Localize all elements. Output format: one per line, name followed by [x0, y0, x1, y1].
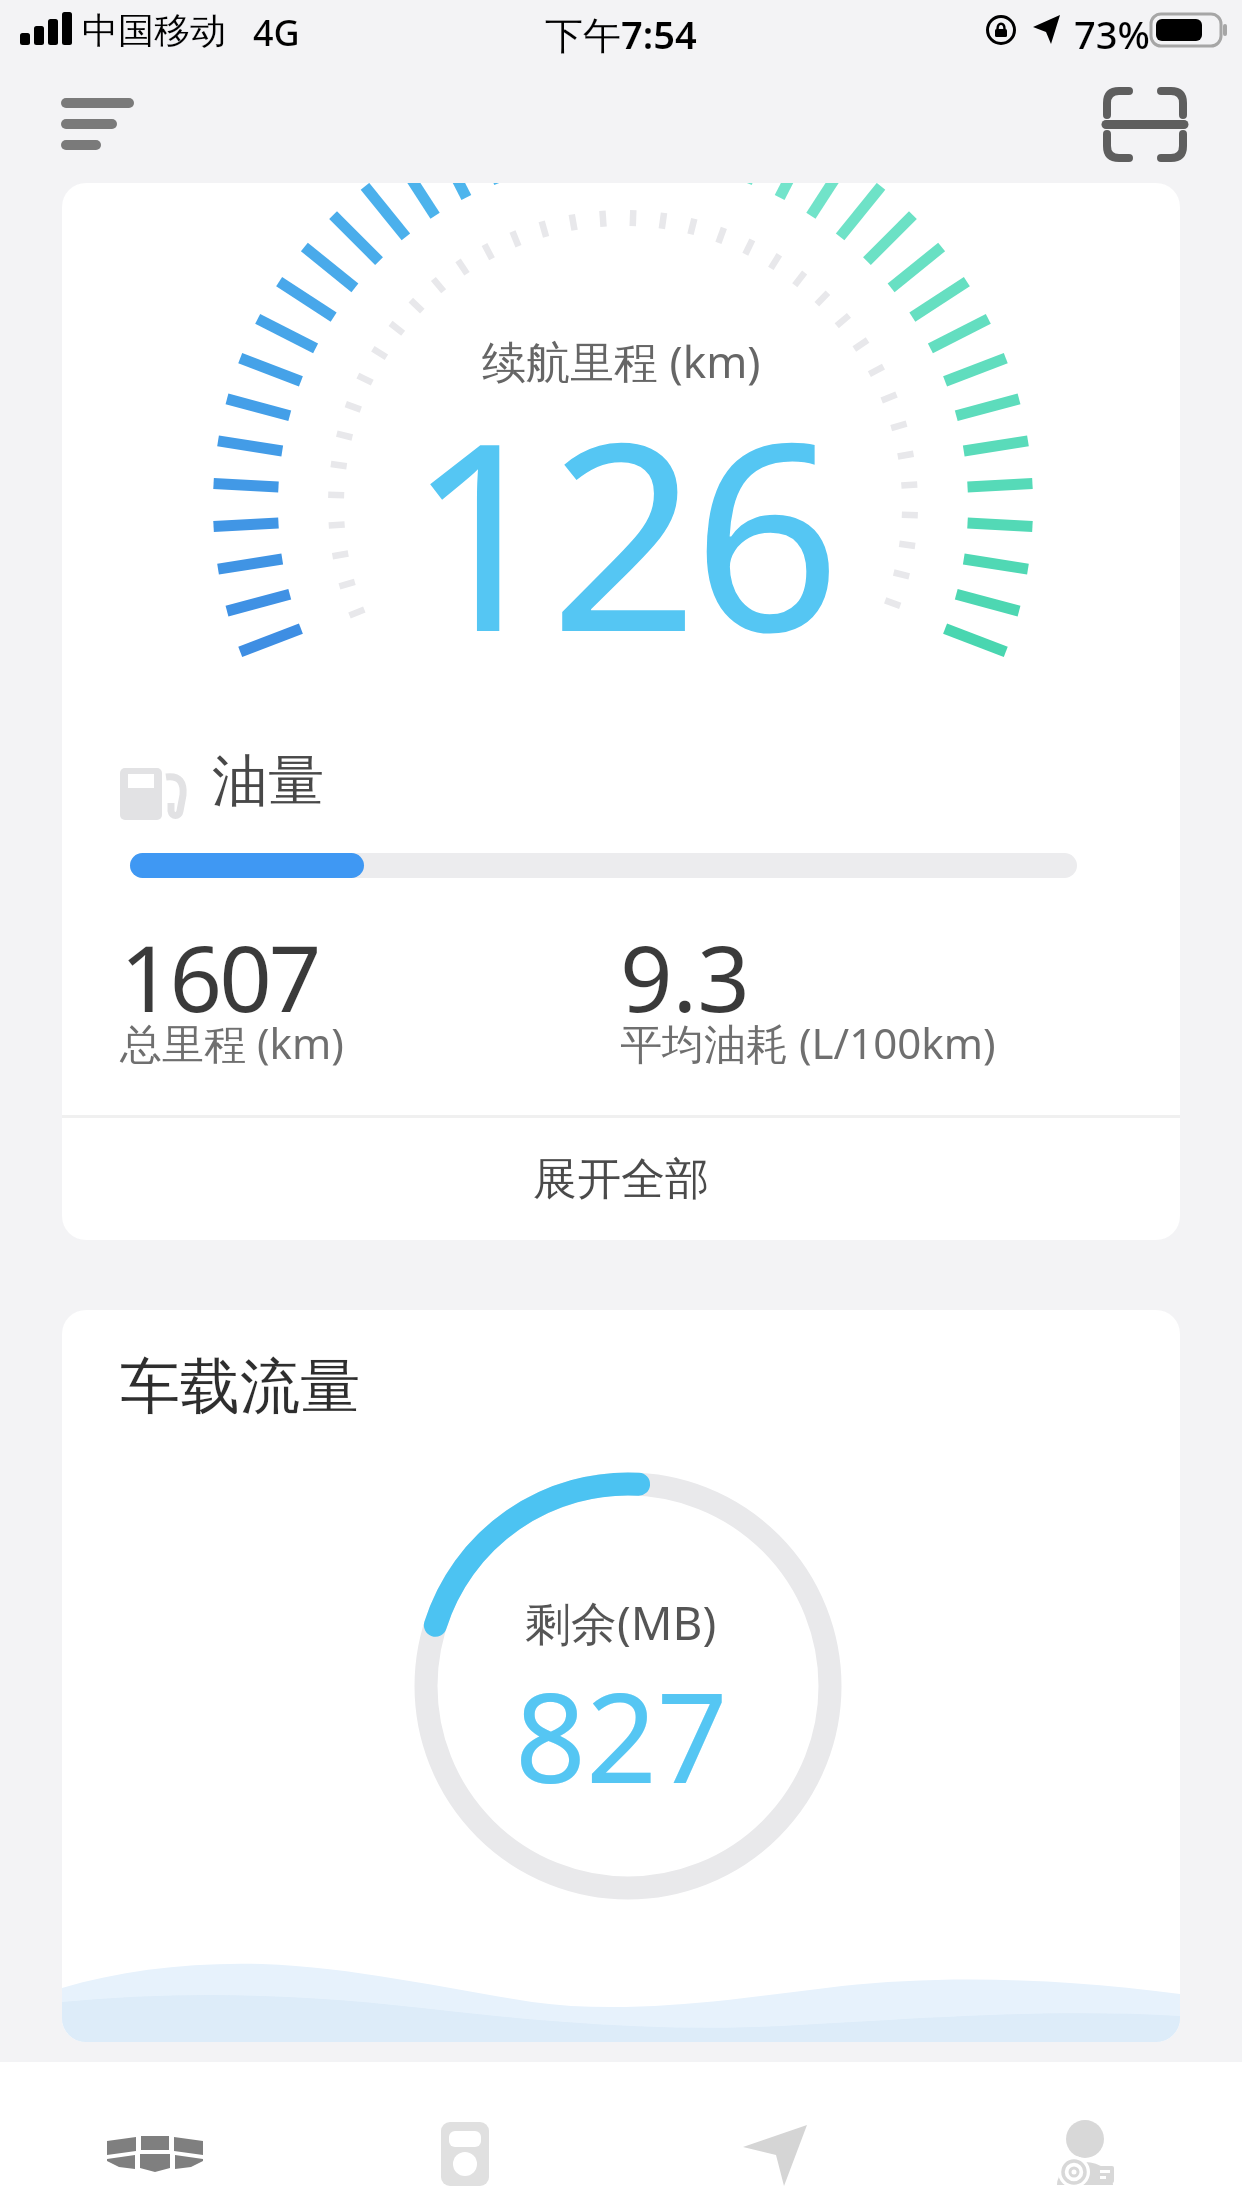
staticText: 1607: [120, 914, 319, 1039]
staticText: 续航里程 (km): [482, 331, 761, 391]
button[interactable]: [620, 2062, 931, 2208]
staticText: 车载流量: [120, 1349, 360, 1425]
staticText: 126: [407, 353, 836, 707]
staticText: 下午7:54: [545, 8, 697, 60]
staticText: 73%: [1074, 8, 1150, 60]
button[interactable]: 展开全部: [62, 1118, 1180, 1240]
button[interactable]: [40, 80, 155, 170]
button[interactable]: [310, 2062, 620, 2208]
staticText: 4G: [253, 8, 300, 57]
staticText: 展开全部: [533, 1152, 709, 1207]
staticText: 827: [515, 1650, 728, 1819]
staticText: 总里程 (km): [120, 1014, 344, 1071]
staticText: 平均油耗 (L/100km): [620, 1014, 996, 1071]
staticText: 剩余(MB): [525, 1591, 717, 1654]
staticText: 中国移动: [82, 8, 226, 53]
staticText: 9.3: [620, 914, 750, 1039]
button[interactable]: [931, 2062, 1242, 2208]
button[interactable]: [1090, 75, 1202, 175]
button[interactable]: 车载流量: [62, 1310, 1180, 2042]
staticText: 油量: [212, 746, 324, 817]
button[interactable]: [0, 2062, 310, 2208]
